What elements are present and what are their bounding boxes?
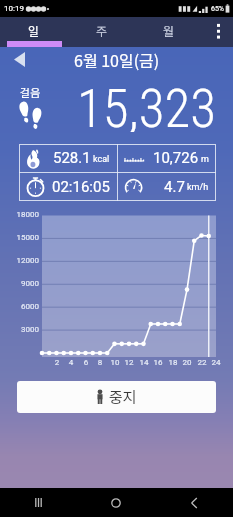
button[interactable]: Back — [155, 488, 233, 517]
staticText: 18 — [165, 358, 181, 367]
staticText: 3000 — [0, 325, 39, 334]
staticText: 16 — [150, 358, 166, 367]
staticText: 4 — [63, 358, 79, 367]
button[interactable]: Home — [77, 488, 155, 517]
staticText: 65% — [211, 5, 224, 13]
staticText: 8 — [92, 358, 108, 367]
staticText: 4.7 — [164, 178, 185, 196]
staticText: 6월 10일(금) — [74, 48, 160, 71]
staticText: 12 — [121, 358, 137, 367]
button[interactable]: 4.7 — [117, 172, 216, 201]
staticText: 15000 — [0, 233, 39, 242]
staticText: km/h — [187, 182, 209, 193]
staticText: 일 — [28, 22, 40, 39]
staticText: 10 — [107, 358, 123, 367]
staticText: 2 — [49, 358, 65, 367]
staticText: 20 — [179, 358, 195, 367]
staticText: 6 — [78, 358, 94, 367]
button[interactable]: Previous day — [7, 47, 31, 71]
staticText: 10,726 — [153, 149, 199, 167]
button[interactable]: 10,726 — [117, 144, 216, 172]
staticText: 6000 — [0, 302, 39, 311]
button[interactable]: 중지 — [17, 381, 216, 413]
button[interactable]: 02:16:05 — [19, 172, 117, 201]
staticText: 12000 — [0, 256, 39, 265]
staticText: 528.1 — [53, 149, 91, 167]
staticText: 22 — [194, 358, 210, 367]
button[interactable]: More options — [203, 17, 233, 47]
staticText: 24 — [208, 358, 224, 367]
staticText: 중지 — [109, 386, 137, 408]
staticText: 10:19 — [4, 4, 24, 13]
button[interactable]: Recent apps — [0, 488, 77, 517]
staticText: 주 — [96, 22, 108, 39]
staticText: 월 — [163, 22, 175, 39]
staticText: 18000 — [0, 210, 39, 219]
button[interactable]: 일 — [0, 17, 68, 47]
staticText: 02:16:05 — [52, 178, 110, 196]
staticText: m — [201, 154, 209, 165]
button[interactable]: 월 — [135, 17, 203, 47]
staticText: 걸음 — [20, 84, 41, 100]
staticText: 15,323 — [77, 78, 216, 132]
button[interactable]: 주 — [68, 17, 135, 47]
staticText: 9000 — [0, 279, 39, 288]
staticText: 14 — [136, 358, 152, 367]
button[interactable]: 528.1 — [19, 144, 117, 172]
staticText: kcal — [93, 154, 110, 165]
